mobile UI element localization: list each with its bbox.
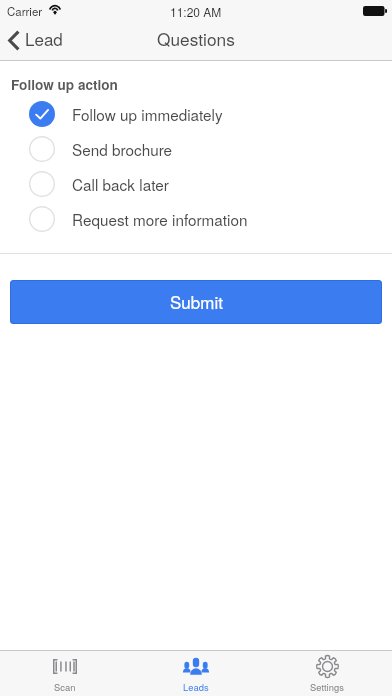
staticText: Call back later [72,173,169,195]
button[interactable]: Scan [0,651,130,696]
staticText: Carrier [7,3,43,19]
button[interactable]: Settings [261,651,392,696]
staticText: Follow up action [11,75,118,94]
staticText: Send brochure [72,138,173,160]
button[interactable]: Submit [10,280,382,324]
staticText: 11:20 AM [170,3,222,20]
staticText: Request more information [72,208,248,230]
staticText: Lead [25,26,63,50]
button[interactable]: Leads [130,651,261,696]
other: Leads [183,657,209,675]
staticText: Submit [170,289,223,313]
staticText: Settings [310,680,344,693]
other: Settings [316,655,339,678]
other: Scan [53,659,77,674]
button[interactable]: Follow up immediately [0,96,392,131]
staticText: Follow up immediately [72,103,223,125]
staticText: Scan [54,680,76,693]
button[interactable]: Lead [0,21,73,55]
staticText: Questions [157,26,235,51]
button[interactable]: Request more information [0,201,392,236]
button[interactable]: Send brochure [0,131,392,166]
staticText: Leads [183,680,209,693]
button[interactable]: Call back later [0,166,392,201]
